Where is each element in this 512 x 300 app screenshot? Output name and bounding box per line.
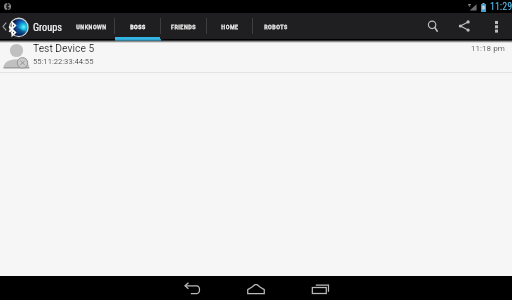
staticText: 55:11:22:33:44:55 bbox=[33, 57, 94, 66]
button[interactable]: BOSS bbox=[115, 13, 160, 39]
staticText: Groups bbox=[33, 21, 63, 33]
button[interactable]: Groups bbox=[0, 13, 69, 39]
staticText: HOME bbox=[221, 23, 239, 30]
button[interactable]: More options bbox=[483, 13, 509, 39]
button[interactable]: UNKNOWN bbox=[69, 13, 114, 39]
button[interactable]: Share bbox=[448, 13, 479, 39]
staticText: ROBOTS bbox=[264, 23, 288, 30]
button[interactable]: Test Device 5 bbox=[0, 39, 512, 73]
button[interactable]: Back bbox=[173, 276, 211, 300]
other: Bluetooth notification bbox=[4, 3, 11, 10]
staticText: BOSS bbox=[130, 23, 146, 30]
button[interactable]: Search bbox=[417, 13, 448, 39]
button[interactable]: HOME bbox=[207, 13, 252, 39]
staticText: 11:18 pm bbox=[471, 43, 505, 52]
staticText: UNKNOWN bbox=[76, 23, 107, 30]
staticText: FRIENDS bbox=[171, 23, 196, 30]
button[interactable]: Home bbox=[237, 276, 275, 300]
button[interactable]: ROBOTS bbox=[253, 13, 298, 39]
staticText: 11:29 bbox=[490, 1, 512, 13]
button[interactable]: FRIENDS bbox=[161, 13, 206, 39]
staticText: Test Device 5 bbox=[33, 42, 95, 54]
button[interactable]: Recent apps bbox=[301, 276, 339, 300]
